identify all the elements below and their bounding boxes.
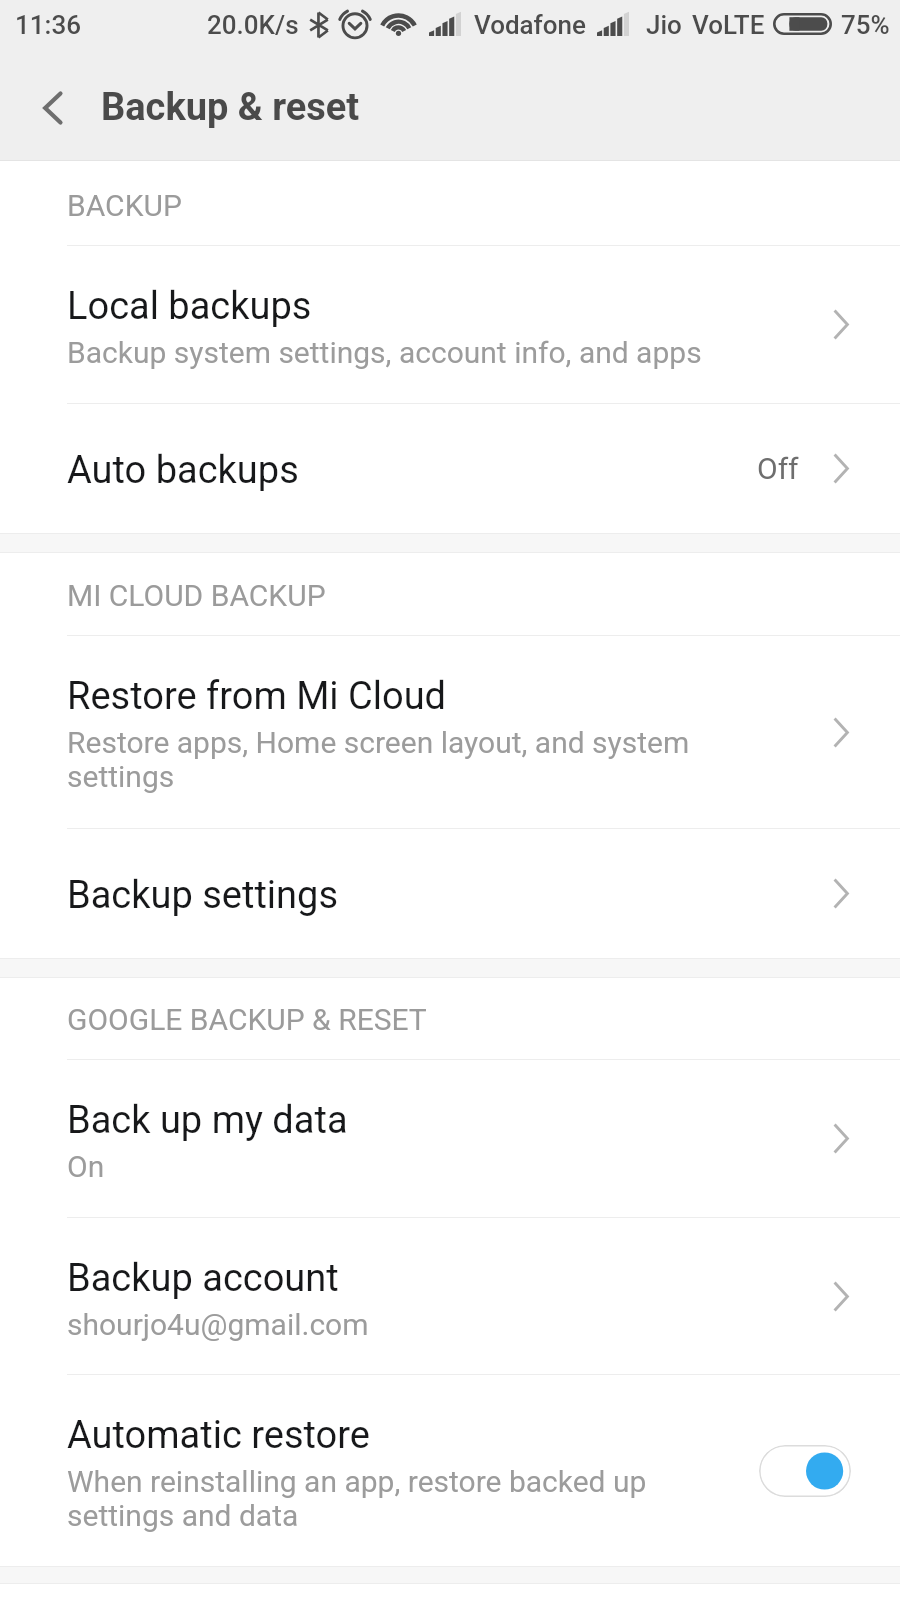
button[interactable]: Local backups <box>0 246 900 403</box>
staticText: Off <box>757 451 799 486</box>
button[interactable]: Restore from Mi Cloud <box>0 636 900 828</box>
button[interactable]: Backup account <box>0 1218 900 1374</box>
staticText: MI CLOUD BACKUP <box>67 578 326 613</box>
staticText: Backup settings <box>67 873 339 918</box>
staticText: When reinstalling an app, restore backed… <box>67 1464 757 1533</box>
staticText: Restore apps, Home screen layout, and sy… <box>67 725 757 794</box>
staticText: BACKUP <box>67 188 182 223</box>
staticText: Automatic restore <box>67 1413 370 1458</box>
button[interactable]: Back up my data <box>0 1060 900 1217</box>
staticText: On <box>67 1149 757 1184</box>
staticText: Vodafone <box>474 10 586 40</box>
staticText: VoLTE <box>692 10 765 40</box>
staticText: Backup account <box>67 1256 339 1301</box>
staticText: 20.0K/s <box>207 10 299 40</box>
staticText: Jio <box>646 10 682 40</box>
button[interactable]: Auto backups <box>0 404 900 533</box>
staticText: Backup & reset <box>101 85 360 130</box>
staticText: shourjo4u@gmail.com <box>67 1307 757 1342</box>
button[interactable]: Automatic restore <box>759 1445 851 1497</box>
staticText: 75% <box>841 10 890 40</box>
staticText: Restore from Mi Cloud <box>67 674 447 719</box>
staticText: Auto backups <box>67 448 299 493</box>
staticText: 11:36 <box>15 10 81 40</box>
button[interactable]: Back <box>0 55 92 160</box>
staticText: Backup system settings, account info, an… <box>67 335 757 370</box>
button[interactable]: Backup settings <box>0 829 900 958</box>
staticText: Local backups <box>67 284 312 329</box>
button[interactable]: Automatic restore <box>0 1375 900 1566</box>
staticText: Back up my data <box>67 1098 348 1143</box>
staticText: GOOGLE BACKUP & RESET <box>67 1002 427 1037</box>
